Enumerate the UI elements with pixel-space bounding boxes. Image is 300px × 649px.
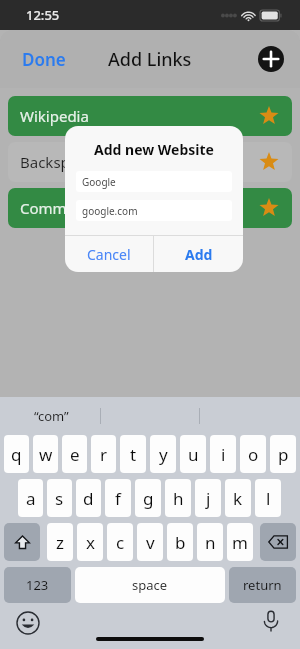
button[interactable]: d (76, 479, 101, 517)
button[interactable]: u (180, 435, 206, 473)
button[interactable]: n (197, 523, 223, 561)
button[interactable]: Cancel (65, 236, 153, 272)
staticText: Backspace (20, 152, 259, 172)
button[interactable]: space (75, 567, 225, 603)
staticText: Command (20, 198, 259, 218)
button[interactable]: o (240, 435, 266, 473)
staticText: i (221, 443, 226, 466)
staticText: Cancel (87, 245, 131, 264)
staticText: Wikipedia (20, 106, 259, 126)
button[interactable]: Backspace (260, 523, 296, 561)
staticText: l (266, 487, 271, 510)
button[interactable]: “com” (34, 407, 69, 425)
button[interactable]: Dictation (260, 610, 282, 632)
button[interactable]: w (33, 435, 58, 473)
button[interactable]: Emoji (16, 611, 40, 635)
staticText: z (56, 531, 64, 554)
staticText: x (86, 531, 95, 554)
button[interactable]: m (227, 523, 253, 561)
button[interactable]: c (107, 523, 133, 561)
staticText: 123 (26, 576, 49, 594)
button[interactable]: y (150, 435, 176, 473)
staticText: m (232, 531, 248, 554)
button[interactable]: k (225, 479, 251, 517)
staticText: f (115, 487, 121, 510)
staticText: j (206, 487, 211, 510)
staticText: google.com (82, 204, 138, 218)
button[interactable]: q (4, 435, 29, 473)
button[interactable]: return (229, 567, 296, 603)
button[interactable]: Wikipedia (8, 96, 292, 136)
button[interactable]: j (195, 479, 221, 517)
staticText: return (243, 576, 282, 594)
button[interactable]: x (77, 523, 103, 561)
staticText: u (188, 443, 199, 466)
button[interactable]: g (135, 479, 161, 517)
staticText: w (39, 443, 53, 466)
staticText: t (130, 443, 137, 466)
button[interactable]: 123 (4, 567, 71, 603)
button[interactable]: Done (14, 42, 74, 77)
button[interactable]: r (91, 435, 116, 473)
staticText: Done (22, 48, 66, 71)
button[interactable]: e (62, 435, 87, 473)
button[interactable]: Backspace (8, 142, 292, 182)
button[interactable]: t (120, 435, 146, 473)
button[interactable]: Shift (4, 523, 40, 561)
staticText: Add Links (108, 47, 192, 72)
staticText: k (233, 487, 243, 510)
staticText: a (26, 487, 36, 510)
button[interactable]: z (47, 523, 73, 561)
button[interactable]: i (210, 435, 236, 473)
button[interactable]: a (18, 479, 43, 517)
staticText: c (116, 531, 125, 554)
button[interactable]: google.com (76, 200, 232, 221)
staticText: b (175, 531, 186, 554)
staticText: q (11, 443, 22, 466)
button[interactable]: Command (8, 188, 292, 228)
button[interactable]: p (270, 435, 296, 473)
staticText: v (146, 531, 155, 554)
staticText: g (143, 487, 154, 510)
staticText: 12:55 (26, 6, 60, 24)
staticText: Google (82, 175, 116, 189)
button[interactable]: l (255, 479, 281, 517)
staticText: n (205, 531, 216, 554)
button[interactable]: Add (154, 236, 243, 272)
staticText: r (100, 443, 108, 466)
staticText: p (278, 443, 289, 466)
button[interactable]: s (47, 479, 72, 517)
staticText: e (70, 443, 80, 466)
button[interactable]: Add (258, 46, 284, 72)
button[interactable]: Google (76, 171, 232, 192)
staticText: o (248, 443, 259, 466)
staticText: h (173, 487, 184, 510)
staticText: d (83, 487, 94, 510)
button[interactable]: h (165, 479, 191, 517)
staticText: Add new Website (65, 140, 243, 159)
staticText: Add (185, 245, 213, 264)
staticText: y (159, 443, 168, 466)
button[interactable]: v (137, 523, 163, 561)
staticText: space (132, 576, 168, 594)
staticText: s (55, 487, 64, 510)
button[interactable]: f (105, 479, 131, 517)
button[interactable]: b (167, 523, 193, 561)
